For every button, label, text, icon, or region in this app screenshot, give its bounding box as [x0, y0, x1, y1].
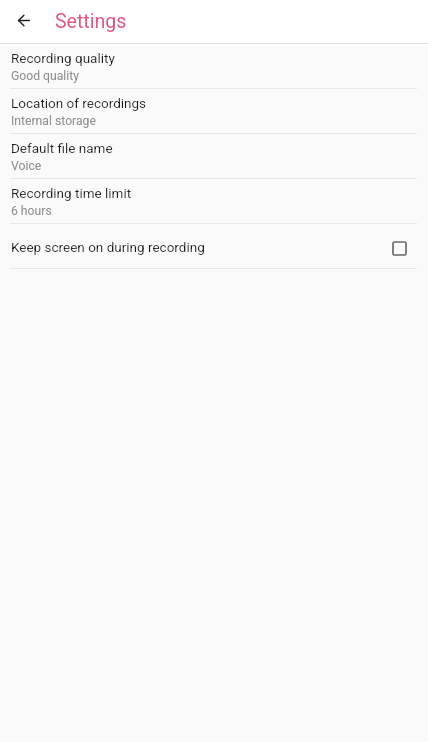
staticText: Location of recordings: [11, 95, 147, 111]
button[interactable]: Default file name: [0, 134, 428, 178]
staticText: Default file name: [11, 140, 113, 156]
staticText: Recording time limit: [11, 185, 132, 201]
button[interactable]: Keep screen on during recording: [392, 241, 407, 256]
button[interactable]: Navigate up: [4, 0, 44, 40]
staticText: Voice: [11, 159, 42, 173]
staticText: Recording quality: [11, 50, 115, 66]
button[interactable]: Recording quality: [0, 44, 428, 88]
button[interactable]: Recording time limit: [0, 179, 428, 223]
staticText: Internal storage: [11, 114, 96, 128]
staticText: Good quality: [11, 69, 80, 83]
staticText: Settings: [55, 10, 127, 33]
button[interactable]: Location of recordings: [0, 89, 428, 133]
staticText: Keep screen on during recording: [11, 239, 205, 255]
staticText: 6 hours: [11, 204, 52, 218]
button[interactable]: Keep screen on during recording: [0, 224, 428, 268]
